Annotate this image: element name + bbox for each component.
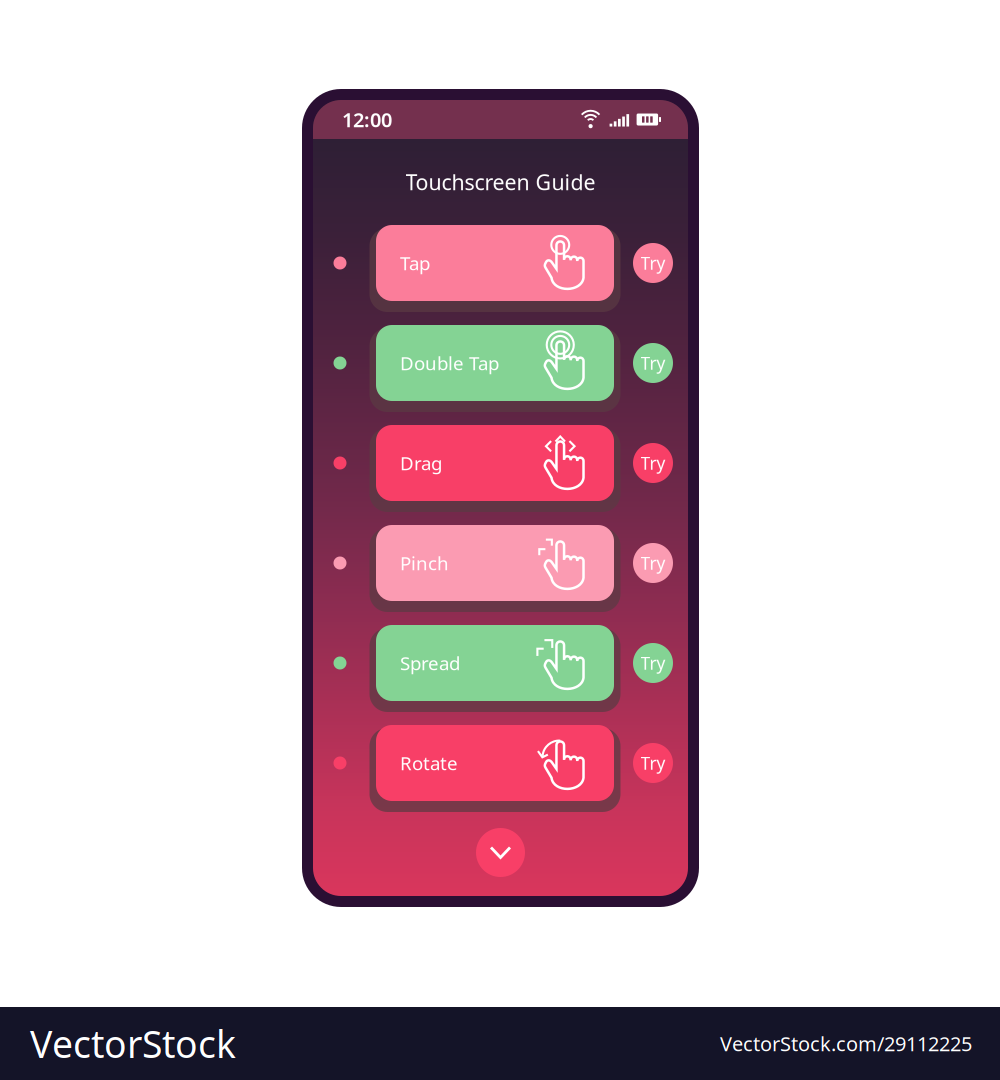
button[interactable]: Try	[633, 343, 673, 383]
staticText: Double Tap	[400, 351, 499, 375]
button[interactable]: Tap	[369, 225, 620, 301]
staticText: Touchscreen Guide	[405, 168, 595, 196]
staticText: Try	[640, 351, 665, 374]
staticText: Try	[640, 551, 665, 574]
staticText: Try	[640, 651, 665, 674]
staticText: Try	[640, 751, 665, 774]
staticText: VectorStock	[30, 1019, 236, 1068]
staticText: Spread	[400, 651, 460, 675]
staticText: 12:00	[342, 106, 392, 133]
staticText: Try	[640, 251, 665, 274]
staticText: Rotate	[400, 751, 458, 775]
staticText: Pinch	[400, 551, 449, 575]
button[interactable]: Try	[633, 543, 673, 583]
button[interactable]: Double Tap	[369, 325, 620, 401]
button[interactable]: Try	[633, 643, 673, 683]
staticText: Drag	[400, 451, 442, 475]
button[interactable]: Try	[633, 443, 673, 483]
button[interactable]: Spread	[369, 625, 620, 701]
staticText: Tap	[400, 251, 430, 275]
button[interactable]: Try	[633, 743, 673, 783]
staticText: Try	[640, 451, 665, 474]
button[interactable]: Drag	[369, 425, 620, 501]
staticText: VectorStock.com/29112225	[720, 1030, 972, 1057]
button[interactable]: Show more gestures	[476, 828, 525, 877]
button[interactable]: Try	[633, 243, 673, 283]
button[interactable]: Rotate	[369, 725, 620, 801]
button[interactable]: Pinch	[369, 525, 620, 601]
